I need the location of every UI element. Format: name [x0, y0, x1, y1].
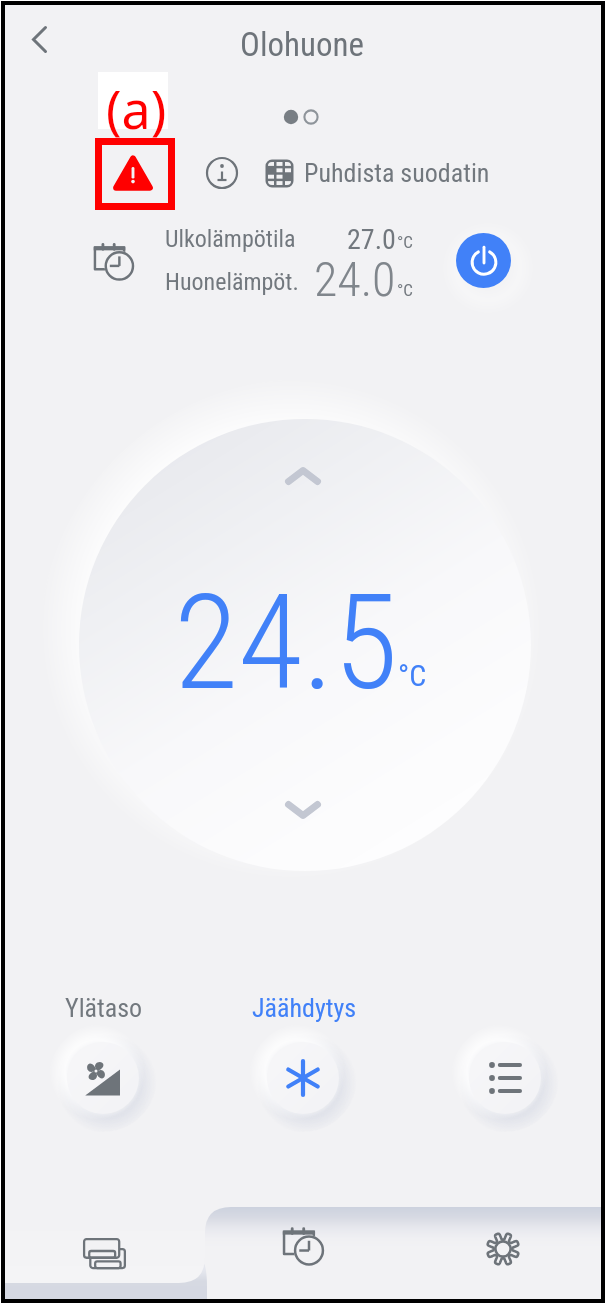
staticText: Olohuone — [4, 25, 600, 64]
button[interactable]: Schedule — [277, 1219, 329, 1271]
button[interactable]: Settings — [477, 1223, 529, 1275]
staticText: Ulkolämpötila — [165, 225, 296, 253]
staticText: °C — [397, 232, 413, 252]
staticText: 24.0 — [314, 251, 396, 307]
staticText: °C — [397, 280, 413, 300]
button[interactable]: Warning — [109, 149, 157, 197]
staticText: (a) — [106, 73, 167, 144]
button[interactable]: Fan speed — [67, 1042, 139, 1114]
button[interactable]: Info — [198, 149, 246, 197]
staticText: °C — [398, 658, 427, 693]
button[interactable]: Power — [456, 233, 511, 288]
staticText: 27.0 — [347, 223, 396, 256]
staticText: Jäähdytys — [252, 993, 357, 1023]
button[interactable]: Indoor unit — [75, 1223, 131, 1279]
staticText: 24.5 — [174, 566, 398, 721]
button[interactable]: Cooling mode — [267, 1042, 339, 1114]
button[interactable]: Puhdista suodatin — [265, 149, 490, 197]
button[interactable]: Menu — [469, 1042, 541, 1114]
staticText: Huonelämpöt. — [165, 268, 299, 296]
button[interactable]: Back — [8, 5, 60, 57]
staticText: Ylätaso — [65, 993, 143, 1023]
staticText: Puhdista suodatin — [304, 158, 490, 188]
button[interactable]: 24.5 — [79, 419, 531, 871]
